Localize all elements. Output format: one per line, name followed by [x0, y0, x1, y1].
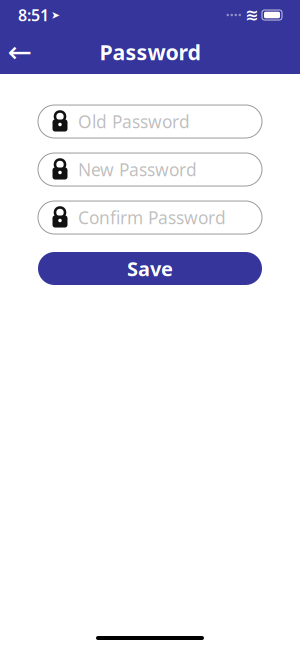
staticText: Password: [99, 38, 200, 66]
staticText: 8:51: [18, 4, 49, 26]
button[interactable]: Save: [38, 252, 262, 285]
button[interactable]: New Password: [38, 153, 262, 186]
staticText: Save: [127, 255, 173, 282]
staticText: ←: [7, 35, 32, 69]
staticText: New Password: [78, 158, 197, 181]
staticText: ≋: [245, 6, 258, 24]
staticText: ➤: [51, 9, 60, 21]
button[interactable]: Confirm Password: [38, 201, 262, 234]
button[interactable]: Back: [0, 32, 40, 72]
staticText: Confirm Password: [78, 206, 226, 229]
staticText: Old Password: [78, 110, 190, 133]
button[interactable]: Old Password: [38, 105, 262, 138]
